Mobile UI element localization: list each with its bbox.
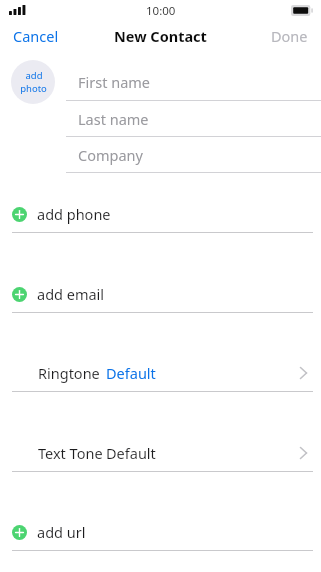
staticText: Cancel [13,26,59,46]
staticText: add [25,69,43,82]
button[interactable]: First name [66,64,321,100]
staticText: add phone [37,204,111,224]
button[interactable]: add [11,60,55,104]
staticText: Default [106,363,156,383]
button[interactable]: Ringtone [0,357,321,389]
button[interactable]: add phone [0,198,321,230]
button[interactable]: add email [0,278,321,310]
button[interactable]: Cancel [0,23,67,49]
staticText: Done [271,26,308,46]
staticText: Ringtone [38,363,100,383]
staticText: Text Tone [38,443,103,463]
button[interactable]: Done [263,23,321,49]
staticText: Default [106,443,156,463]
staticText: Company [78,145,143,165]
staticText: Last name [78,109,149,129]
staticText: add email [37,284,105,304]
staticText: 10:00 [146,3,176,19]
button[interactable]: Last name [66,101,321,136]
staticText: add url [37,522,86,542]
button[interactable]: Text Tone [0,437,321,469]
staticText: photo [20,82,47,95]
button[interactable]: add url [0,516,321,548]
staticText: New Contact [114,26,207,46]
staticText: First name [78,72,151,92]
button[interactable]: Company [66,137,321,172]
